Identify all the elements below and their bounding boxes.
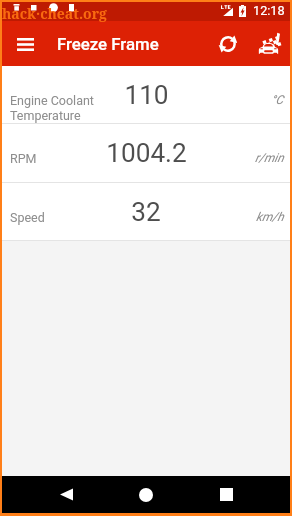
staticText: hack·cheat.org <box>2 4 107 23</box>
button[interactable]: Recent apps <box>186 476 266 513</box>
staticText: r/min <box>255 151 284 165</box>
button[interactable]: Speed <box>0 183 292 240</box>
button[interactable]: Refresh <box>208 21 248 66</box>
staticText: °C <box>271 93 284 107</box>
button[interactable]: Back <box>26 476 106 513</box>
button[interactable]: RPM <box>0 124 292 182</box>
staticText: Engine Coolant Temperature <box>10 93 94 123</box>
staticText: 1004.2 <box>106 138 187 169</box>
staticText: 12:18 <box>253 3 285 18</box>
button[interactable]: Engine Coolant Temperature <box>0 66 292 123</box>
button[interactable]: Home <box>106 476 186 513</box>
button[interactable]: Open navigation drawer <box>8 27 42 61</box>
staticText: Freeze Frame <box>57 34 159 54</box>
staticText: 110 <box>124 80 169 111</box>
staticText: km/h <box>256 210 284 224</box>
staticText: RPM <box>10 151 37 166</box>
staticText: Speed <box>10 210 45 225</box>
staticText: 32 <box>131 197 161 228</box>
button[interactable]: Start race timing <box>248 21 288 66</box>
